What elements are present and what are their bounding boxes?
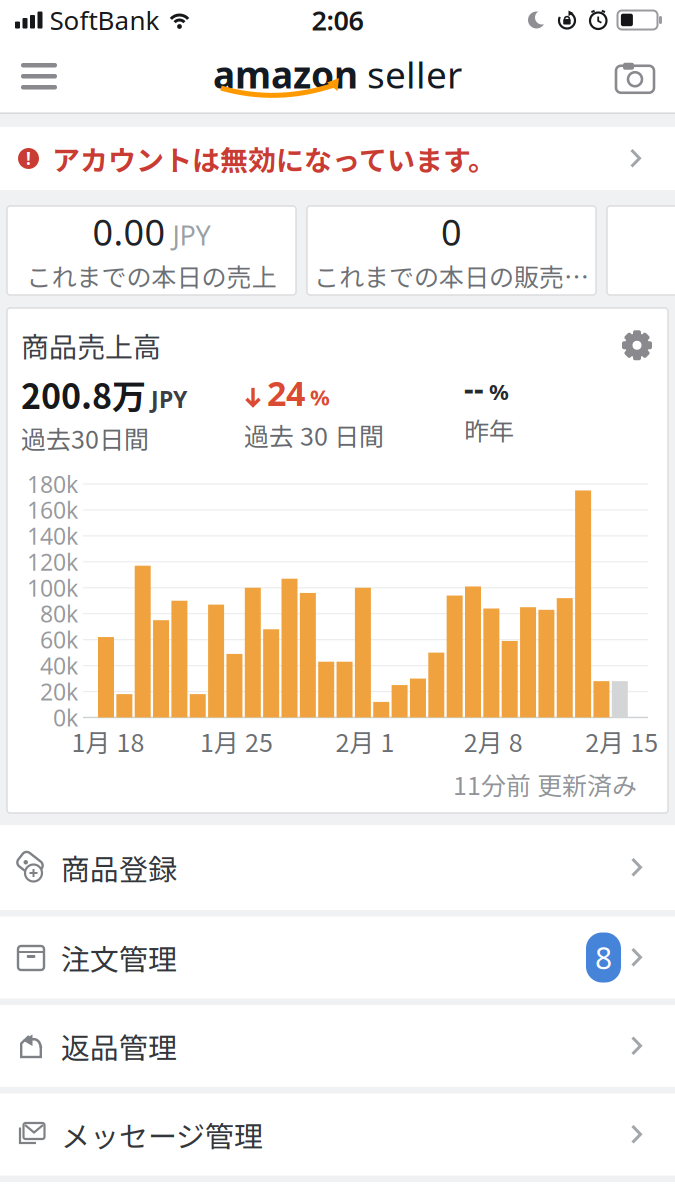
staticText: 160k: [27, 494, 78, 526]
staticText: 200.8万: [21, 369, 146, 419]
staticText: 2月 1: [335, 723, 394, 759]
staticText: メッセージ管理: [61, 1113, 263, 1155]
staticText: 120k: [27, 546, 78, 577]
staticText: %: [310, 382, 330, 412]
staticText: これまでの本日の販売…: [314, 257, 589, 294]
staticText: 過去 30 日間: [244, 417, 384, 453]
staticText: amazon: [213, 49, 358, 99]
button[interactable]: 商品登録: [0, 825, 675, 910]
staticText: 11分前 更新済み: [453, 766, 637, 802]
staticText: SoftBank: [49, 2, 159, 38]
button[interactable]: 0: [307, 206, 596, 295]
button[interactable]: [607, 206, 675, 295]
staticText: 1月 18: [71, 723, 144, 759]
button[interactable]: [620, 328, 654, 362]
button[interactable]: メッセージ管理: [0, 1093, 675, 1175]
staticText: 100k: [27, 572, 78, 603]
staticText: JPY: [172, 217, 210, 253]
staticText: 140k: [27, 520, 78, 551]
staticText: これまでの本日の売上: [26, 257, 276, 294]
staticText: 20k: [40, 676, 78, 707]
staticText: 8: [595, 937, 612, 978]
button[interactable]: [616, 61, 675, 91]
staticText: 24: [267, 369, 305, 416]
staticText: 0k: [53, 702, 78, 733]
staticText: %: [489, 376, 509, 406]
button[interactable]: 0.00: [7, 206, 296, 295]
button[interactable]: [0, 63, 57, 89]
staticText: 80k: [40, 598, 78, 629]
staticText: 2月 8: [464, 723, 523, 759]
staticText: 注文管理: [61, 936, 177, 978]
staticText: --: [464, 367, 484, 408]
staticText: 0.00: [92, 207, 165, 256]
staticText: 昨年: [464, 411, 514, 448]
staticText: 1月 25: [200, 723, 273, 759]
button[interactable]: 注文管理: [0, 916, 675, 998]
staticText: JPY: [151, 383, 187, 415]
staticText: アカウントは無効になっています。: [52, 138, 496, 179]
staticText: 過去30日間: [21, 420, 149, 456]
staticText: seller: [367, 49, 462, 99]
staticText: 商品売上高: [21, 325, 161, 365]
staticText: 2月 15: [585, 723, 658, 759]
staticText: 商品登録: [61, 846, 177, 888]
staticText: 2:06: [311, 2, 363, 38]
button[interactable]: !: [0, 127, 675, 190]
button[interactable]: 返品管理: [0, 1005, 675, 1087]
staticText: 60k: [40, 624, 78, 655]
staticText: 180k: [27, 468, 78, 500]
staticText: 0: [441, 207, 462, 256]
staticText: 返品管理: [61, 1025, 177, 1067]
staticText: !: [26, 147, 31, 170]
staticText: 40k: [40, 650, 78, 681]
